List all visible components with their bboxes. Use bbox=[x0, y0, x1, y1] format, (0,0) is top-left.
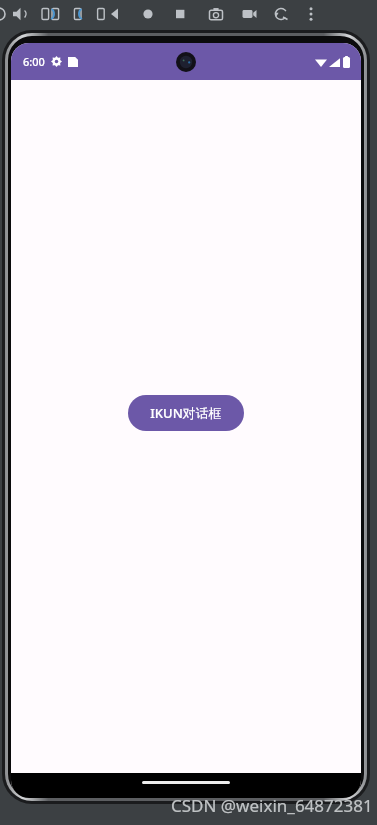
staticText: IKUN对话框 bbox=[150, 404, 222, 422]
staticText: CSDN @weixin_64872381 bbox=[171, 794, 373, 817]
staticText: 6:00 bbox=[23, 54, 45, 69]
button[interactable]: IKUN对话框 bbox=[128, 395, 244, 431]
